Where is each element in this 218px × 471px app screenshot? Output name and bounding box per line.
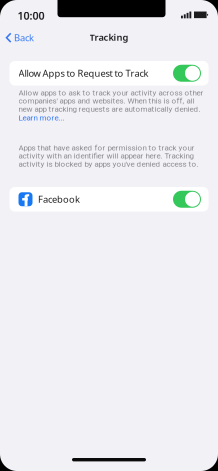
- button[interactable]: Allow Apps to Request to Track: [9, 61, 208, 85]
- staticText: Apps that have asked for permission to t…: [18, 143, 198, 169]
- staticText: 10:00: [17, 8, 44, 23]
- staticText: Learn more...: [18, 113, 64, 122]
- staticText: Allow Apps to Request to Track: [18, 67, 148, 79]
- staticText: Allow apps to ask to track your activity…: [18, 88, 203, 114]
- button[interactable]: Back: [5, 31, 34, 44]
- staticText: Tracking: [89, 31, 128, 43]
- staticText: Back: [14, 31, 34, 44]
- button[interactable]: Facebook: [9, 187, 208, 211]
- staticText: Facebook: [38, 193, 80, 205]
